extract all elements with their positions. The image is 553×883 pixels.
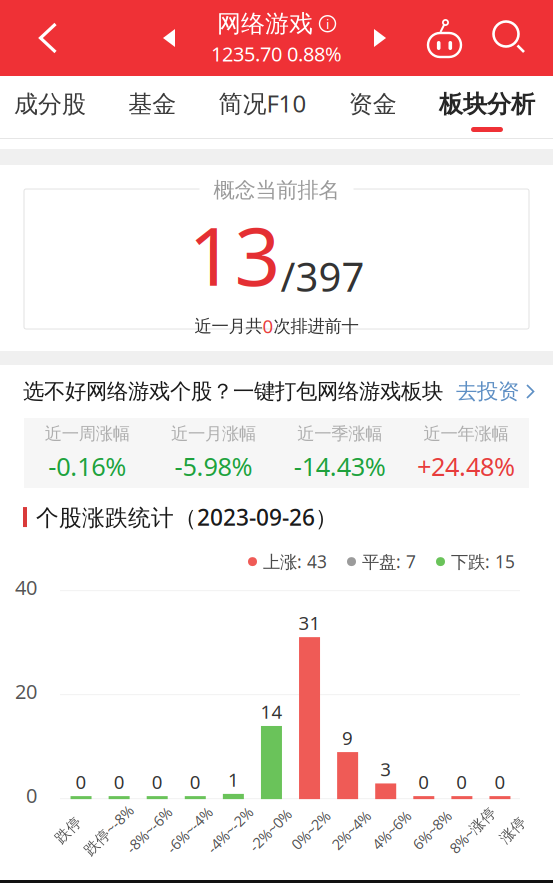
staticText: -5.98% [174, 449, 252, 483]
staticText: 平盘: 7 [362, 550, 416, 573]
staticText: 网络游戏 [217, 9, 313, 38]
staticText: 概念当前排名 [213, 177, 339, 203]
button[interactable]: 基金 [128, 76, 176, 138]
button[interactable]: 简况F10 [218, 76, 306, 138]
staticText: 涨停 [498, 821, 528, 839]
staticText: 4%~6% [367, 820, 415, 840]
staticText: 9 [342, 725, 353, 750]
staticText: i [326, 15, 329, 33]
staticText: 上涨: 43 [263, 550, 327, 573]
staticText: 0 [190, 769, 201, 794]
button[interactable]: 搜索 [484, 0, 536, 76]
staticText: 近一周涨幅 [45, 423, 130, 444]
staticText: 0 [418, 769, 429, 794]
staticText: 板块分析 [439, 89, 535, 119]
staticText: 14 [260, 699, 282, 724]
button[interactable]: 资金 [349, 76, 397, 138]
staticText: 个股涨跌统计（2023-09-26） [36, 502, 338, 532]
staticText: 近一月涨幅 [171, 423, 256, 444]
staticText: 40 [15, 574, 37, 600]
staticText: 0 [456, 769, 467, 794]
staticText: 跌停 [53, 821, 83, 839]
staticText: +24.48% [417, 449, 515, 483]
staticText: 基金 [128, 89, 176, 119]
staticText: 去投资 [456, 378, 519, 405]
staticText: 1235.70 0.88% [211, 40, 342, 67]
staticText: 13 [188, 201, 280, 308]
staticText: 0 [262, 314, 273, 338]
button[interactable]: 选不好网络游戏个股？一键打包网络游戏板块 [0, 365, 553, 418]
staticText: 成分股 [14, 89, 86, 119]
staticText: 近一月共 [194, 315, 262, 337]
staticText: 8%~涨停 [443, 820, 501, 840]
button[interactable]: 下一个 [355, 0, 405, 76]
button[interactable]: 智能助手 [405, 0, 484, 76]
staticText: 20 [15, 678, 37, 704]
staticText: 近一年涨幅 [423, 423, 508, 444]
staticText: -14.43% [294, 449, 386, 483]
staticText: /397 [280, 250, 364, 303]
staticText: 0 [26, 782, 37, 808]
staticText: 2%~4% [327, 820, 375, 840]
staticText: 0 [152, 769, 163, 794]
staticText: 选不好网络游戏个股？一键打包网络游戏板块 [23, 378, 443, 405]
staticText: 0 [114, 769, 125, 794]
staticText: -6%~-4% [160, 820, 218, 840]
button[interactable]: 板块分析 [439, 76, 535, 138]
staticText: 31 [298, 610, 320, 635]
staticText: 资金 [349, 89, 397, 119]
button[interactable]: 成分股 [14, 76, 86, 138]
staticText: 跌停~-8% [77, 820, 140, 840]
staticText: 简况F10 [218, 87, 306, 119]
staticText: 下跌: 15 [451, 550, 515, 573]
staticText: -4%~-2% [201, 820, 259, 840]
button[interactable]: 返回 [0, 0, 140, 76]
staticText: 0 [494, 769, 505, 794]
button[interactable]: 上一个 [140, 0, 198, 76]
staticText: 0 [75, 769, 86, 794]
staticText: 次排进前十 [273, 315, 358, 337]
staticText: 1 [228, 767, 239, 792]
staticText: 0%~2% [287, 820, 335, 840]
staticText: -2%~0% [244, 820, 297, 840]
staticText: 3 [380, 757, 391, 781]
staticText: -0.16% [48, 449, 126, 483]
staticText: -8%~-6% [120, 820, 178, 840]
staticText: 近一季涨幅 [297, 423, 382, 444]
staticText: 6%~8% [408, 820, 456, 840]
